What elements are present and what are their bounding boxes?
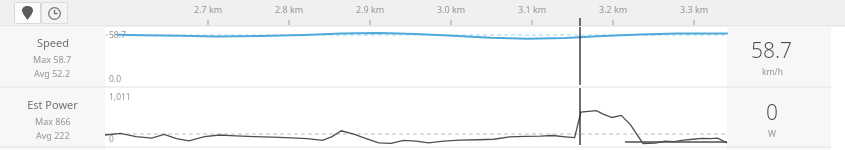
button[interactable]: 0 (727, 88, 845, 150)
button[interactable]: Time (41, 2, 68, 24)
staticText: Max 866 (35, 115, 71, 127)
button[interactable]: Map (14, 2, 41, 24)
staticText: 3.2 km (599, 3, 628, 15)
staticText: Speed (37, 35, 69, 50)
staticText: Avg 222 (36, 129, 70, 141)
button[interactable]: Est Power (0, 88, 105, 150)
button[interactable]: Speed (0, 26, 105, 87)
staticText: 0 (766, 98, 778, 127)
staticText: W (768, 128, 776, 140)
staticText: 3.1 km (518, 3, 547, 15)
staticText: 58.7 (109, 29, 126, 41)
staticText: 2.9 km (356, 3, 385, 15)
staticText: Max 58.7 (33, 53, 72, 65)
staticText: 3.0 km (437, 3, 466, 15)
staticText: Est Power (27, 97, 78, 112)
staticText: Avg 52.2 (34, 67, 71, 79)
staticText: 2.8 km (275, 3, 304, 15)
staticText: km/h (762, 66, 783, 78)
staticText: 58.7 (751, 36, 793, 65)
staticText: 0 (109, 133, 114, 145)
button[interactable]: 58.7 (727, 26, 845, 87)
staticText: 2.7 km (194, 3, 223, 15)
staticText: 0.0 (109, 73, 122, 85)
staticText: 3.3 km (680, 3, 709, 15)
staticText: 1,011 (109, 91, 131, 103)
